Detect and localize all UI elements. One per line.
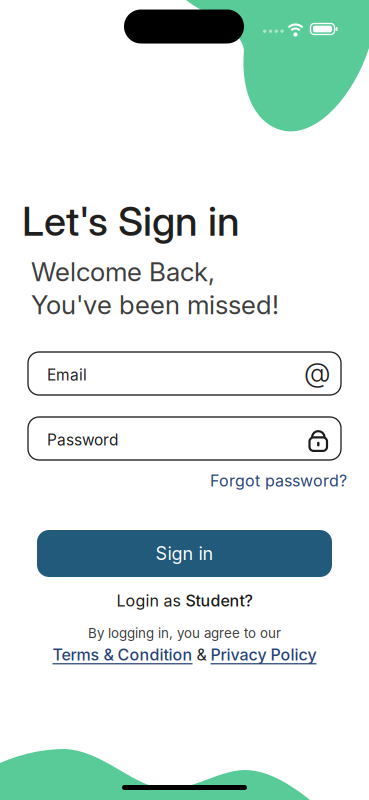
staticText: Terms & Condition [52, 645, 192, 664]
button[interactable]: Password [28, 417, 341, 460]
staticText: Let's Sign in [22, 197, 240, 245]
staticText: Forgot password? [210, 471, 347, 490]
button[interactable]: Sign in [37, 530, 332, 577]
staticText: Password [47, 430, 118, 449]
button[interactable]: Forgot password? [210, 471, 347, 490]
staticText: By logging in, you agree to our [88, 625, 281, 641]
button[interactable]: Login as Student? [116, 591, 252, 610]
staticText: Welcome Back, [31, 256, 215, 287]
staticText: & [196, 645, 206, 664]
staticText: Sign in [155, 543, 213, 564]
staticText: @ [304, 355, 330, 388]
button[interactable]: Terms & Condition [52, 645, 192, 664]
button[interactable]: Email [28, 352, 341, 395]
staticText: Login as Student? [116, 591, 252, 610]
staticText: Email [47, 365, 87, 384]
staticText: You've been missed! [31, 289, 279, 320]
staticText: Privacy Policy [210, 645, 316, 664]
button[interactable]: Privacy Policy [210, 645, 316, 664]
